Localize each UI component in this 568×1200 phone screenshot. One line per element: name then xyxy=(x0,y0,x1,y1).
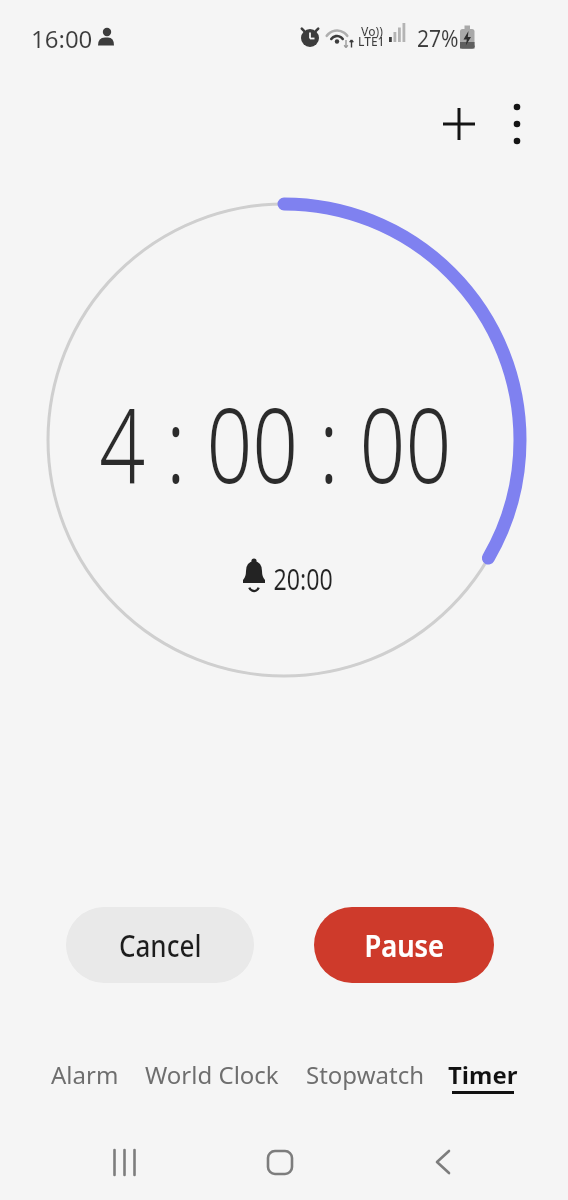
staticText: Alarm xyxy=(51,1058,119,1091)
button[interactable]: Cancel xyxy=(66,907,254,983)
staticText: 16:00 xyxy=(31,22,93,55)
staticText: World Clock xyxy=(145,1058,279,1091)
button[interactable] xyxy=(432,97,486,151)
button[interactable]: Alarm xyxy=(0,1054,195,1094)
staticText: Vo)) xyxy=(361,23,383,39)
button[interactable]: World Clock xyxy=(102,1054,322,1094)
staticText: LTE1 xyxy=(358,33,385,49)
button[interactable] xyxy=(94,1140,154,1186)
staticText: Pause xyxy=(364,924,445,966)
button[interactable] xyxy=(413,1140,473,1186)
button[interactable]: Pause xyxy=(314,907,494,983)
staticText: 4 : 00 : 00 xyxy=(99,373,452,513)
staticText: Timer xyxy=(448,1058,518,1091)
button[interactable] xyxy=(493,100,541,148)
staticText: Stopwatch xyxy=(306,1058,424,1091)
staticText: Cancel xyxy=(119,924,202,966)
staticText: 20:00 xyxy=(273,559,333,598)
button[interactable] xyxy=(250,1140,310,1186)
button[interactable]: Timer xyxy=(373,1054,568,1094)
staticText: 27% xyxy=(417,21,459,54)
button[interactable]: Stopwatch xyxy=(255,1054,475,1094)
